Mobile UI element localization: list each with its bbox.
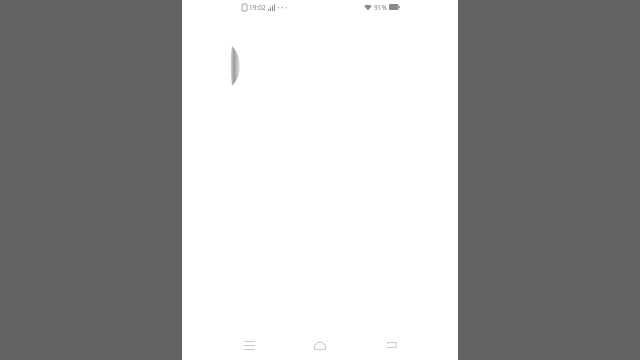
button[interactable]: Home <box>303 330 337 360</box>
staticText: 91% <box>374 3 387 12</box>
staticText: 19:02 <box>249 3 266 12</box>
button[interactable]: Recents <box>232 330 266 360</box>
button[interactable]: Back <box>374 330 408 360</box>
